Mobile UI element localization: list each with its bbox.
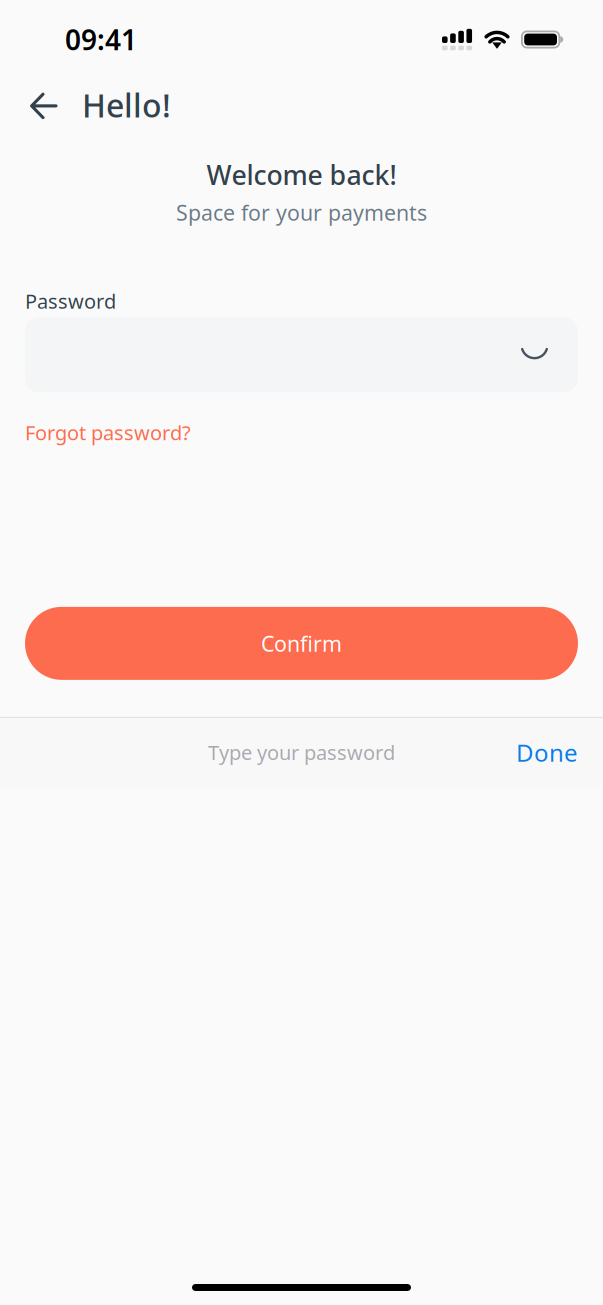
staticText: Welcome back! <box>206 157 396 192</box>
staticText: Password <box>25 288 116 314</box>
staticText: 09:41 <box>65 21 137 58</box>
staticText: Hello! <box>82 84 171 126</box>
staticText: Confirm <box>261 629 342 657</box>
button[interactable]: Show password <box>511 331 559 379</box>
button[interactable]: Back <box>21 80 67 126</box>
staticText: Done <box>516 736 578 768</box>
button[interactable]: Done <box>491 718 603 787</box>
staticText: Forgot password? <box>25 419 191 446</box>
button[interactable]: Forgot password? <box>25 392 191 446</box>
staticText: Type your password <box>208 739 395 766</box>
button[interactable]: Confirm <box>25 607 578 680</box>
staticText: Space for your payments <box>176 198 427 227</box>
